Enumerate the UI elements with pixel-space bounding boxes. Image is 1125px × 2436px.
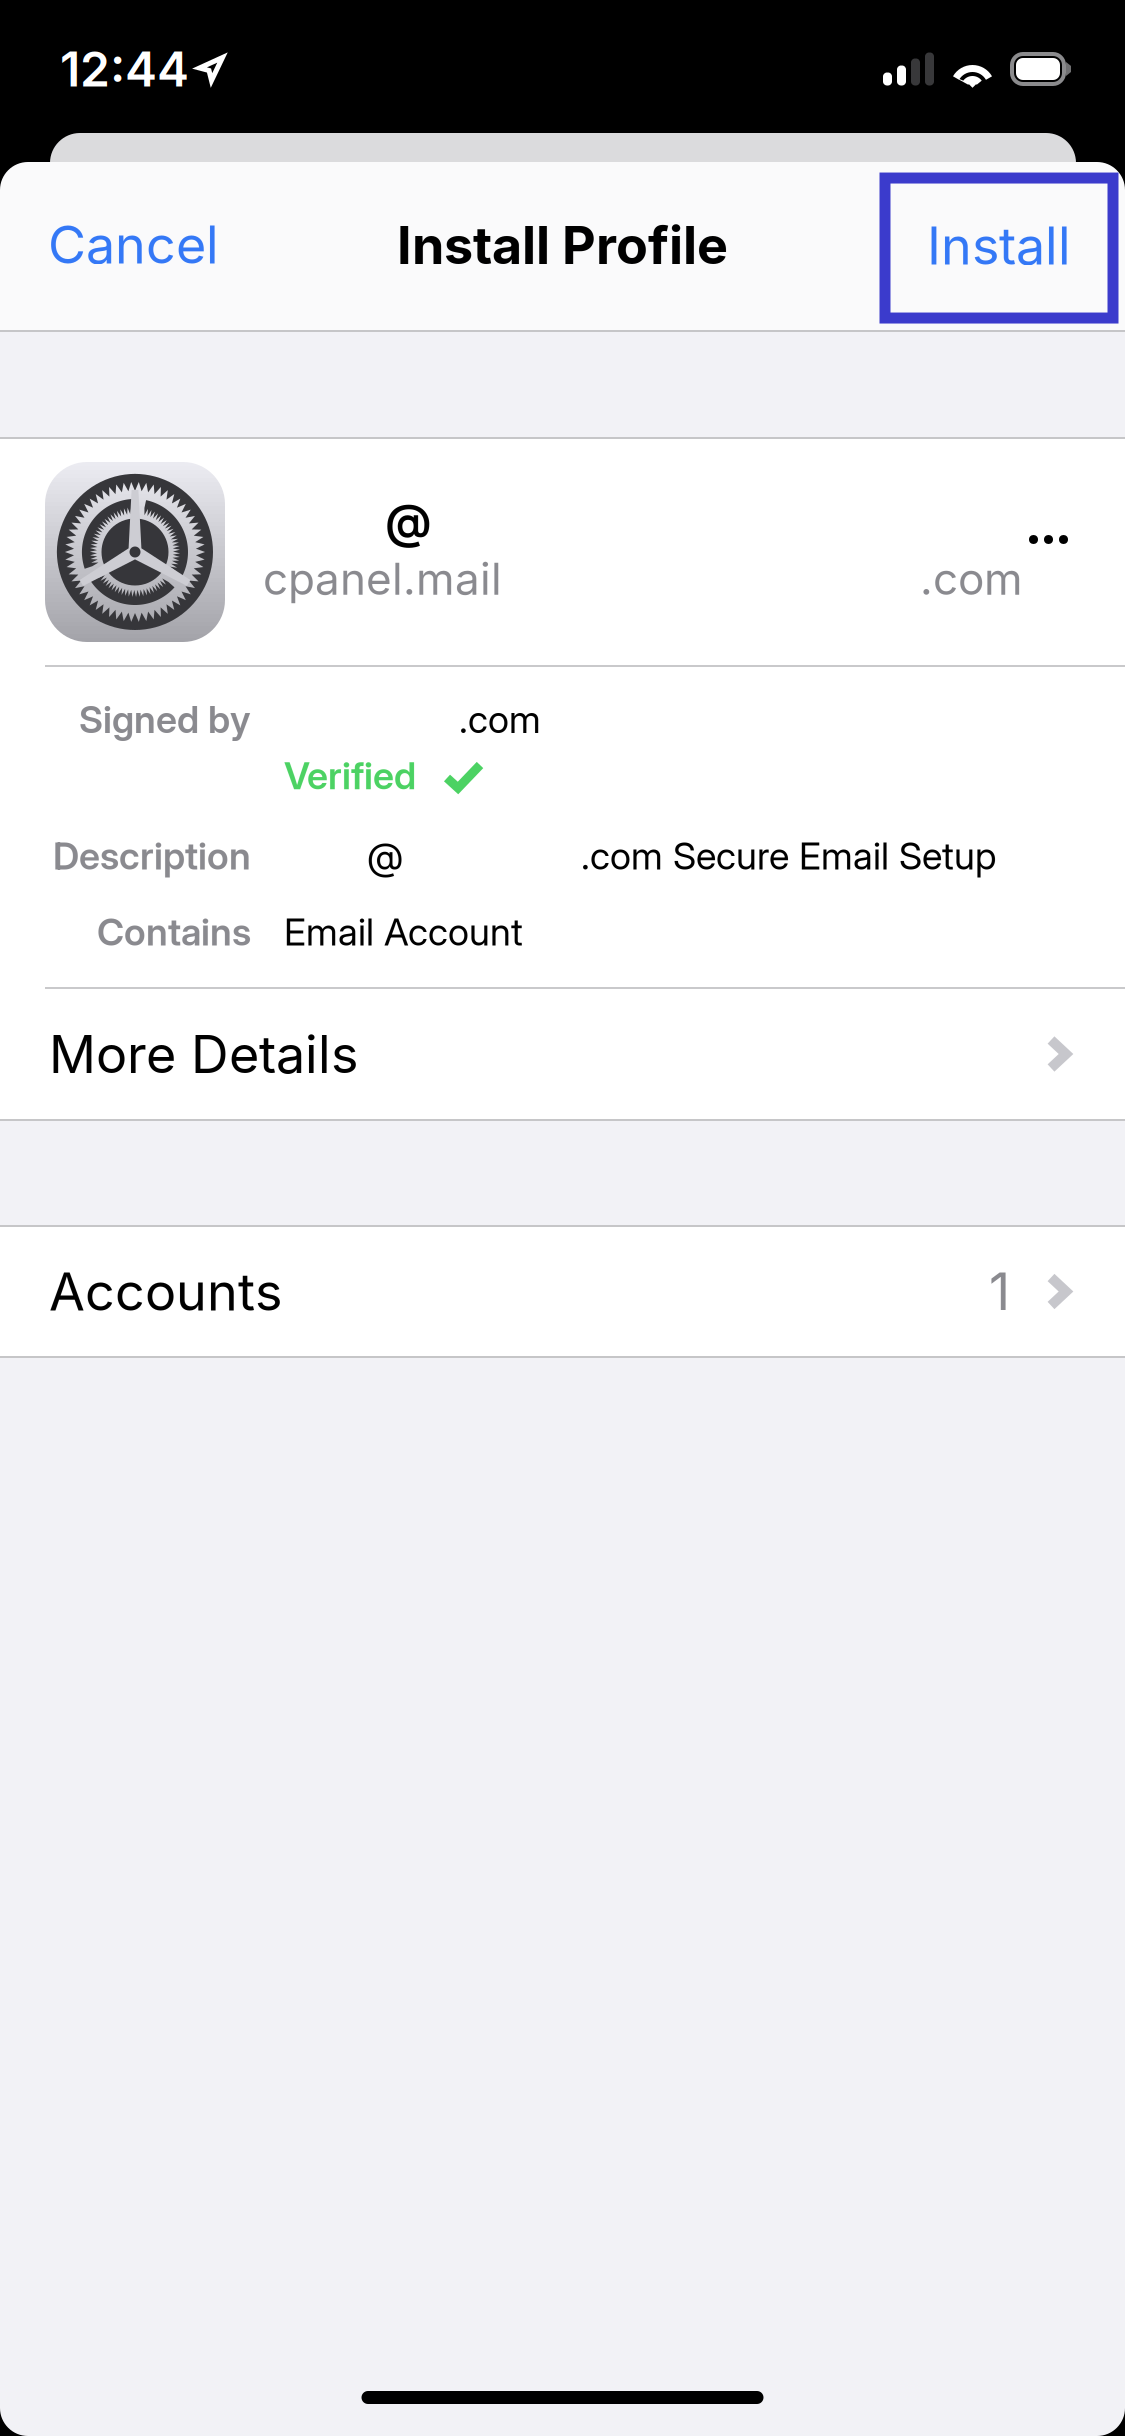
button[interactable]: Install [885,162,1125,330]
staticText: .com [459,697,541,742]
staticText: Email Account [284,909,523,955]
staticText: cpanel.mail [263,552,502,605]
staticText: Contains [97,909,251,955]
staticText: @ [367,833,403,879]
staticText: Install Profile [397,213,728,276]
staticText: Signed by [79,697,251,742]
staticText: Verified [284,753,416,798]
staticText: Install [927,214,1071,277]
button[interactable]: More Details [0,989,1125,1119]
staticText: Cancel [48,213,219,276]
staticText: Description [53,833,251,879]
staticText: @ [385,493,432,549]
button[interactable]: Accounts [0,1227,1125,1356]
staticText: Accounts [49,1260,282,1323]
staticText: .com Secure Email Setup [581,833,996,879]
staticText: .com [920,552,1023,605]
staticText: More Details [49,1022,358,1085]
staticText: 12:44 [60,40,189,98]
button[interactable]: Cancel [0,162,243,330]
staticText: 1 [989,1260,1010,1323]
